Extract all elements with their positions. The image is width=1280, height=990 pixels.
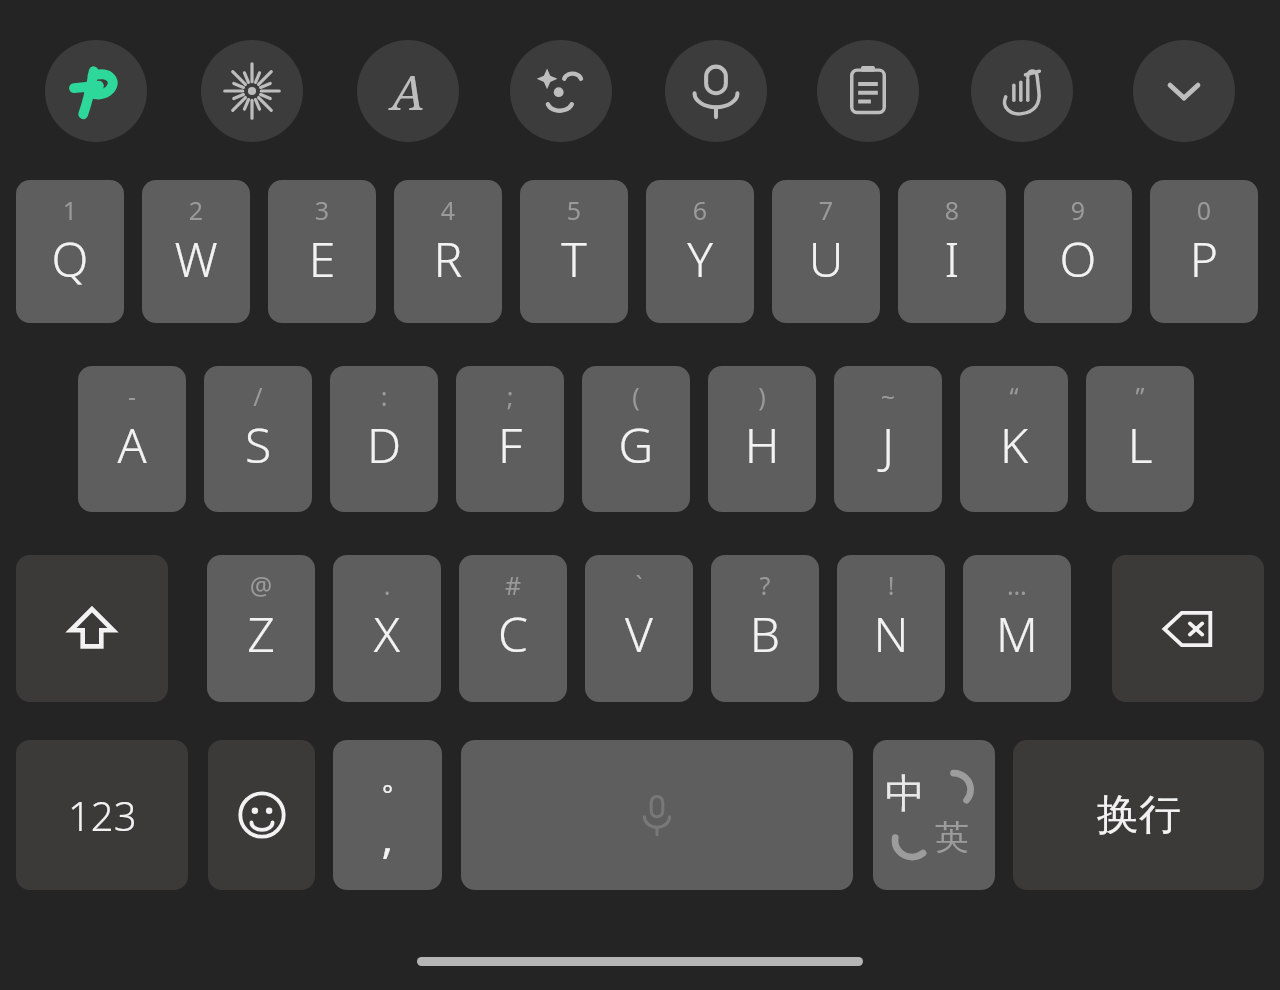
button[interactable]: 123	[16, 740, 188, 890]
staticText: N	[837, 601, 945, 666]
staticText: :	[330, 379, 438, 413]
staticText: 5	[520, 193, 628, 227]
staticText: G	[582, 412, 690, 477]
button[interactable]: °	[333, 740, 442, 890]
button[interactable]: Clipboard	[817, 40, 919, 142]
staticText: …	[963, 568, 1071, 602]
staticText: F	[456, 412, 564, 477]
button[interactable]: 5	[520, 180, 628, 323]
button[interactable]: /	[204, 366, 312, 512]
staticText: L	[1086, 412, 1194, 477]
staticText: (	[582, 379, 690, 413]
staticText: D	[330, 412, 438, 477]
staticText: 换行	[1097, 789, 1181, 842]
staticText: Y	[646, 226, 754, 291]
staticText: I	[898, 226, 1006, 291]
button[interactable]: (	[582, 366, 690, 512]
button[interactable]: )	[708, 366, 816, 512]
staticText: B	[711, 601, 819, 666]
staticText: R	[394, 226, 502, 291]
button[interactable]: ;	[456, 366, 564, 512]
button[interactable]: ~	[834, 366, 942, 512]
staticText: 7	[772, 193, 880, 227]
staticText: “	[960, 379, 1068, 413]
staticText: ;	[456, 379, 564, 413]
staticText: 英	[935, 816, 969, 859]
button[interactable]: Voice input	[665, 40, 767, 142]
staticText: 9	[1024, 193, 1132, 227]
button[interactable]: Shift	[16, 555, 168, 702]
button[interactable]: Space	[461, 740, 853, 890]
staticText: O	[1024, 226, 1132, 291]
staticText: X	[333, 601, 441, 666]
staticText: K	[960, 412, 1068, 477]
staticText: 6	[646, 193, 754, 227]
button[interactable]: 8	[898, 180, 1006, 323]
staticText: 1	[16, 193, 124, 227]
button[interactable]: `	[585, 555, 693, 702]
button[interactable]: Handwriting	[971, 40, 1073, 142]
staticText: 2	[142, 193, 250, 227]
staticText: P	[1150, 226, 1258, 291]
button[interactable]: 6	[646, 180, 754, 323]
button[interactable]: :	[330, 366, 438, 512]
button[interactable]: Font style	[357, 40, 459, 142]
staticText: E	[268, 226, 376, 291]
button[interactable]: Keyboard effects	[201, 40, 303, 142]
button[interactable]: Switch Chinese English	[873, 740, 995, 890]
staticText: U	[772, 226, 880, 291]
button[interactable]: Hide keyboard	[1133, 40, 1235, 142]
button[interactable]: -	[78, 366, 186, 512]
button[interactable]: Stickers	[510, 40, 612, 142]
staticText: 中	[885, 768, 925, 818]
button[interactable]: @	[207, 555, 315, 702]
button[interactable]: #	[459, 555, 567, 702]
button[interactable]: …	[963, 555, 1071, 702]
staticText: T	[520, 226, 628, 291]
button[interactable]: .	[333, 555, 441, 702]
button[interactable]: 换行	[1013, 740, 1264, 890]
button[interactable]: “	[960, 366, 1068, 512]
staticText: C	[459, 601, 567, 666]
staticText: /	[204, 379, 312, 413]
button[interactable]: 1	[16, 180, 124, 323]
staticText: )	[708, 379, 816, 413]
staticText: S	[204, 412, 312, 477]
button[interactable]: 3	[268, 180, 376, 323]
button[interactable]: 7	[772, 180, 880, 323]
staticText: Q	[16, 226, 124, 291]
staticText: ”	[1086, 379, 1194, 413]
staticText: °	[333, 776, 442, 811]
staticText: A	[391, 59, 425, 124]
staticText: #	[459, 568, 567, 602]
staticText: 4	[394, 193, 502, 227]
button[interactable]: !	[837, 555, 945, 702]
button[interactable]: Emoji	[208, 740, 315, 890]
staticText: A	[78, 412, 186, 477]
staticText: M	[963, 601, 1071, 666]
staticText: 3	[268, 193, 376, 227]
button[interactable]: 2	[142, 180, 250, 323]
staticText: !	[837, 568, 945, 602]
staticText: @	[207, 568, 315, 602]
button[interactable]: 9	[1024, 180, 1132, 323]
staticText: ?	[711, 568, 819, 602]
staticText: 8	[898, 193, 1006, 227]
staticText: 123	[68, 788, 137, 842]
staticText: V	[585, 601, 693, 666]
button[interactable]: ?	[711, 555, 819, 702]
staticText: H	[708, 412, 816, 477]
staticText: ,	[333, 806, 442, 866]
button[interactable]: 4	[394, 180, 502, 323]
button[interactable]: Backspace	[1112, 555, 1264, 702]
staticText: 0	[1150, 193, 1258, 227]
button[interactable]: ”	[1086, 366, 1194, 512]
staticText: ~	[834, 379, 942, 413]
staticText: J	[834, 412, 942, 477]
button[interactable]: Input method logo	[45, 40, 147, 142]
staticText: -	[78, 379, 186, 413]
staticText: Z	[207, 601, 315, 666]
button[interactable]: 0	[1150, 180, 1258, 323]
